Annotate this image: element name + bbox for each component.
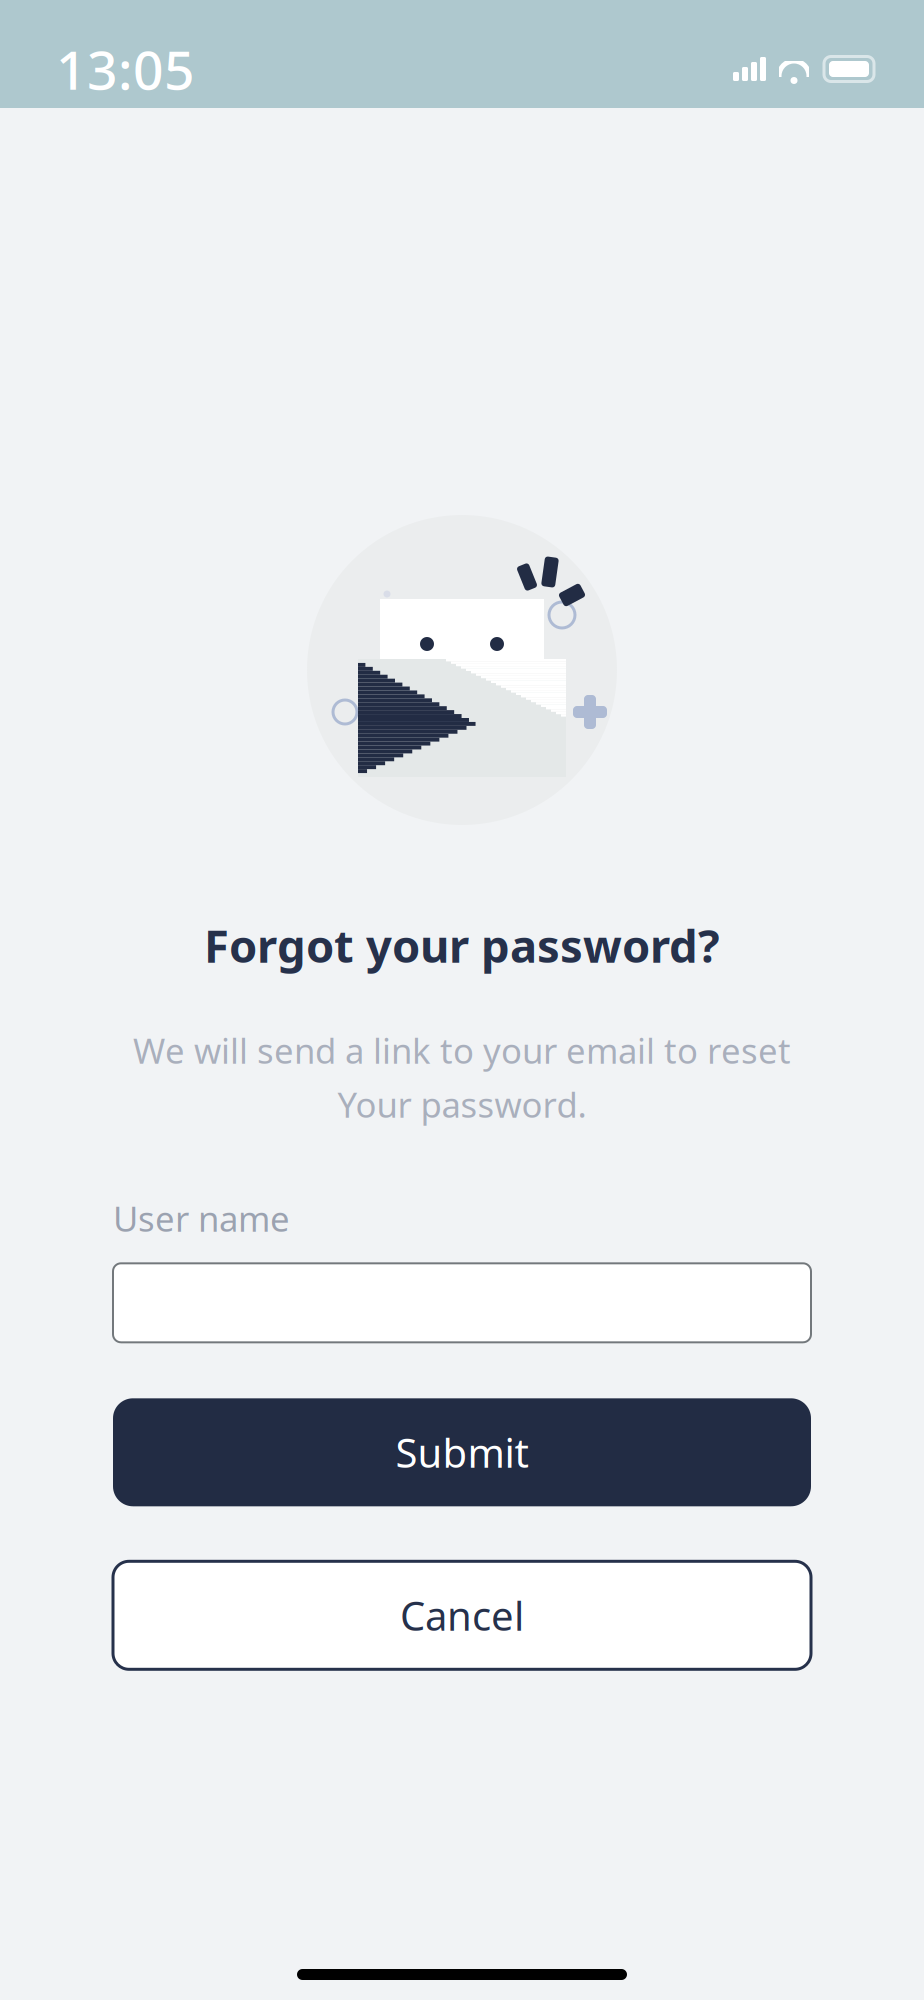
staticText: 13:05 <box>56 34 195 104</box>
staticText: Your password. <box>337 1081 586 1127</box>
staticText: Cancel <box>400 1589 524 1642</box>
button[interactable]: Submit <box>113 1398 811 1506</box>
staticText: User name <box>113 1195 290 1241</box>
button[interactable]: Cancel <box>113 1561 811 1669</box>
staticText: Submit <box>395 1426 528 1479</box>
staticText: Forgot your password? <box>204 915 720 975</box>
staticText: We will send a link to your email to res… <box>133 1027 791 1073</box>
